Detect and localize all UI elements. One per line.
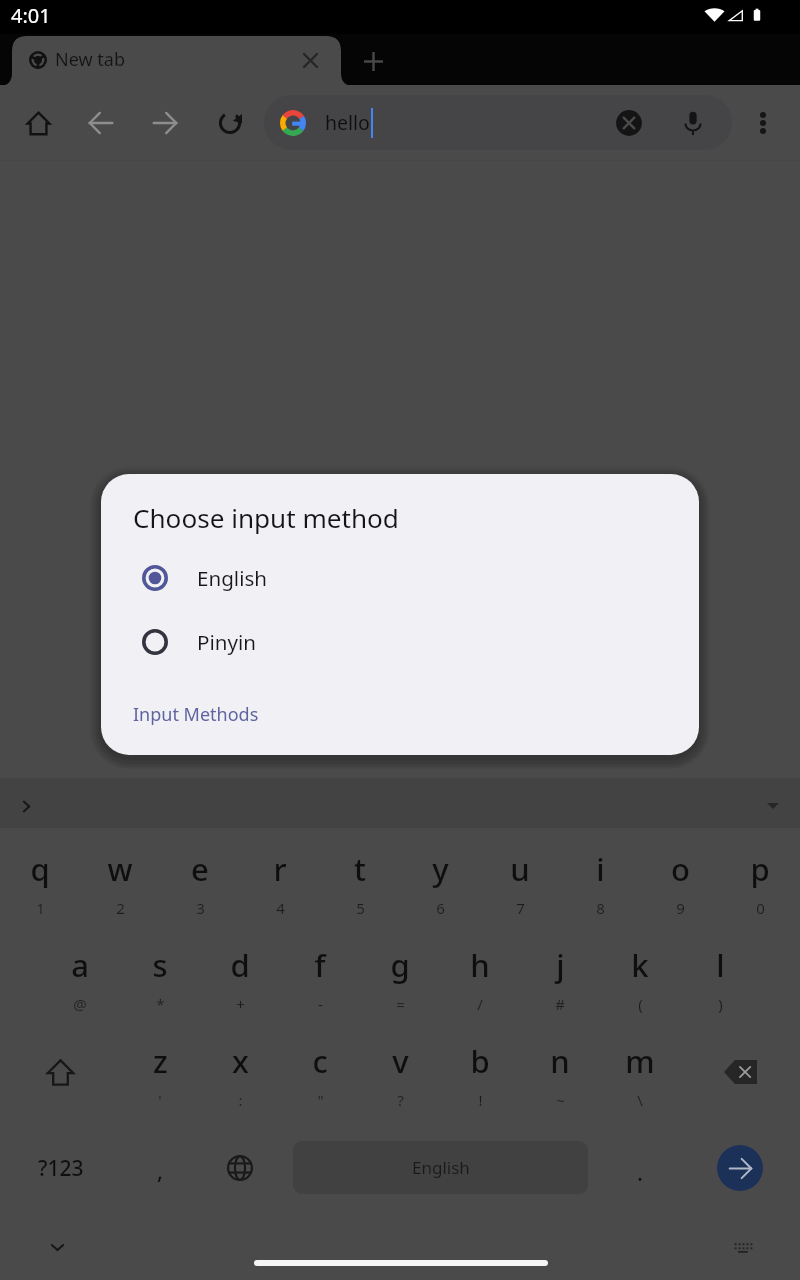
staticText: - (318, 994, 323, 1014)
staticText: " (317, 1090, 324, 1110)
staticText: ~ (556, 1090, 565, 1110)
button[interactable]: Backspace (707, 1032, 773, 1112)
staticText: Input Methods (133, 702, 259, 727)
button[interactable] (101, 615, 699, 669)
button[interactable] (520, 920, 600, 1016)
staticText: v (392, 1040, 409, 1082)
button[interactable] (640, 824, 720, 920)
staticText: 1 (36, 898, 45, 918)
button[interactable] (240, 824, 320, 920)
button[interactable]: ?123 (20, 1140, 102, 1196)
button[interactable] (280, 1016, 360, 1112)
staticText: Choose input method (133, 500, 399, 536)
button[interactable]: Search (717, 1145, 763, 1191)
staticText: , (157, 1155, 164, 1185)
staticText: i (596, 848, 605, 890)
button[interactable] (440, 920, 520, 1016)
button[interactable] (360, 1016, 440, 1112)
button[interactable] (480, 824, 560, 920)
staticText: h (470, 944, 490, 986)
button[interactable] (560, 824, 640, 920)
button[interactable] (120, 920, 200, 1016)
button[interactable]: Input Methods (119, 695, 269, 733)
staticText: x (232, 1040, 249, 1082)
staticText: f (314, 944, 326, 986)
button[interactable]: Back (78, 100, 124, 146)
button[interactable]: Signal (725, 3, 745, 27)
button[interactable]: More suggestions (752, 784, 794, 828)
button[interactable]: Forward (142, 100, 188, 146)
staticText: n (550, 1040, 570, 1082)
button[interactable] (120, 1016, 200, 1112)
staticText: ( (638, 994, 643, 1014)
staticText: 5 (356, 898, 365, 918)
staticText: Pinyin (197, 628, 257, 656)
button[interactable]: Home (15, 100, 61, 146)
staticText: \ (637, 1090, 643, 1110)
staticText: / (477, 994, 483, 1014)
staticText: 0 (756, 898, 765, 918)
staticText: o (671, 848, 690, 890)
button[interactable] (280, 110, 306, 136)
button[interactable]: Wi-Fi (702, 3, 726, 27)
button[interactable] (320, 824, 400, 920)
staticText: = (396, 994, 405, 1014)
button[interactable] (680, 920, 760, 1016)
button[interactable] (101, 551, 699, 605)
button[interactable] (520, 1016, 600, 1112)
button[interactable]: Clear (607, 101, 651, 145)
button[interactable] (440, 1016, 520, 1112)
button[interactable]: English (293, 1141, 588, 1194)
staticText: 4 (276, 898, 285, 918)
staticText: c (312, 1040, 328, 1082)
button[interactable]: Change language (210, 1138, 270, 1198)
button[interactable]: Voice search (671, 101, 715, 145)
staticText: English (197, 564, 268, 592)
staticText: s (152, 944, 168, 986)
button[interactable] (600, 920, 680, 1016)
button[interactable]: Expand suggestions (4, 784, 48, 828)
staticText: r (273, 848, 287, 890)
staticText: hello (325, 109, 370, 136)
staticText: m (625, 1040, 655, 1082)
button[interactable] (40, 920, 120, 1016)
button[interactable]: Shift (27, 1032, 93, 1112)
button[interactable]: Hide keyboard (35, 1225, 79, 1269)
staticText: b (470, 1040, 490, 1082)
staticText: * (156, 994, 165, 1014)
button[interactable] (720, 824, 800, 920)
button[interactable] (200, 1016, 280, 1112)
staticText: 6 (436, 898, 445, 918)
button[interactable]: More options (741, 99, 785, 147)
button[interactable] (0, 824, 80, 920)
staticText: ?123 (38, 1154, 84, 1183)
staticText: 8 (596, 898, 605, 918)
button[interactable] (0, 34, 800, 86)
button[interactable] (264, 95, 732, 150)
staticText: 2 (116, 898, 125, 918)
staticText: English (412, 1156, 470, 1179)
staticText: New tab (55, 47, 125, 72)
staticText: p (750, 848, 770, 890)
button[interactable] (400, 824, 480, 920)
button[interactable]: Reload (207, 100, 253, 146)
staticText: @ (73, 994, 87, 1014)
staticText: 7 (516, 898, 525, 918)
button[interactable]: Close tab (291, 39, 329, 81)
button[interactable] (360, 920, 440, 1016)
button[interactable]: Switch keyboard (721, 1226, 765, 1270)
button[interactable] (280, 920, 360, 1016)
button[interactable]: Battery (747, 3, 767, 27)
button[interactable]: New tab (352, 40, 394, 82)
staticText: # (555, 994, 565, 1014)
button[interactable]: Chrome (26, 48, 50, 72)
button[interactable] (160, 824, 240, 920)
button[interactable]: , (135, 1142, 185, 1198)
button[interactable] (80, 824, 160, 920)
staticText: a (71, 944, 89, 986)
button[interactable] (200, 920, 280, 1016)
button[interactable] (600, 1016, 680, 1112)
staticText: q (30, 848, 50, 890)
staticText: ' (158, 1090, 162, 1110)
